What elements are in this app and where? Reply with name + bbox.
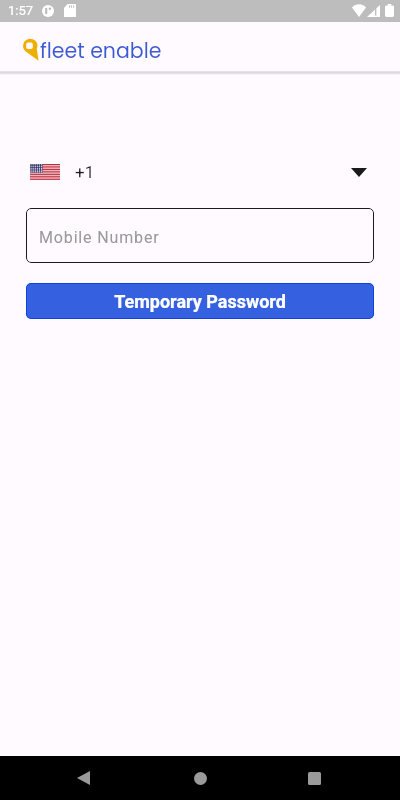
- staticText: Temporary Password: [114, 291, 286, 312]
- button[interactable]: Temporary Password: [26, 283, 374, 319]
- button[interactable]: Mobile Number: [26, 208, 374, 263]
- staticText: +1: [75, 162, 95, 182]
- staticText: 1:57: [8, 3, 34, 18]
- button[interactable]: Back: [59, 756, 107, 800]
- button[interactable]: +1: [30, 155, 367, 189]
- staticText: Mobile Number: [39, 228, 160, 247]
- button[interactable]: Recent apps: [290, 756, 338, 800]
- button[interactable]: Home: [176, 756, 224, 800]
- staticText: fleet enable: [40, 36, 162, 65]
